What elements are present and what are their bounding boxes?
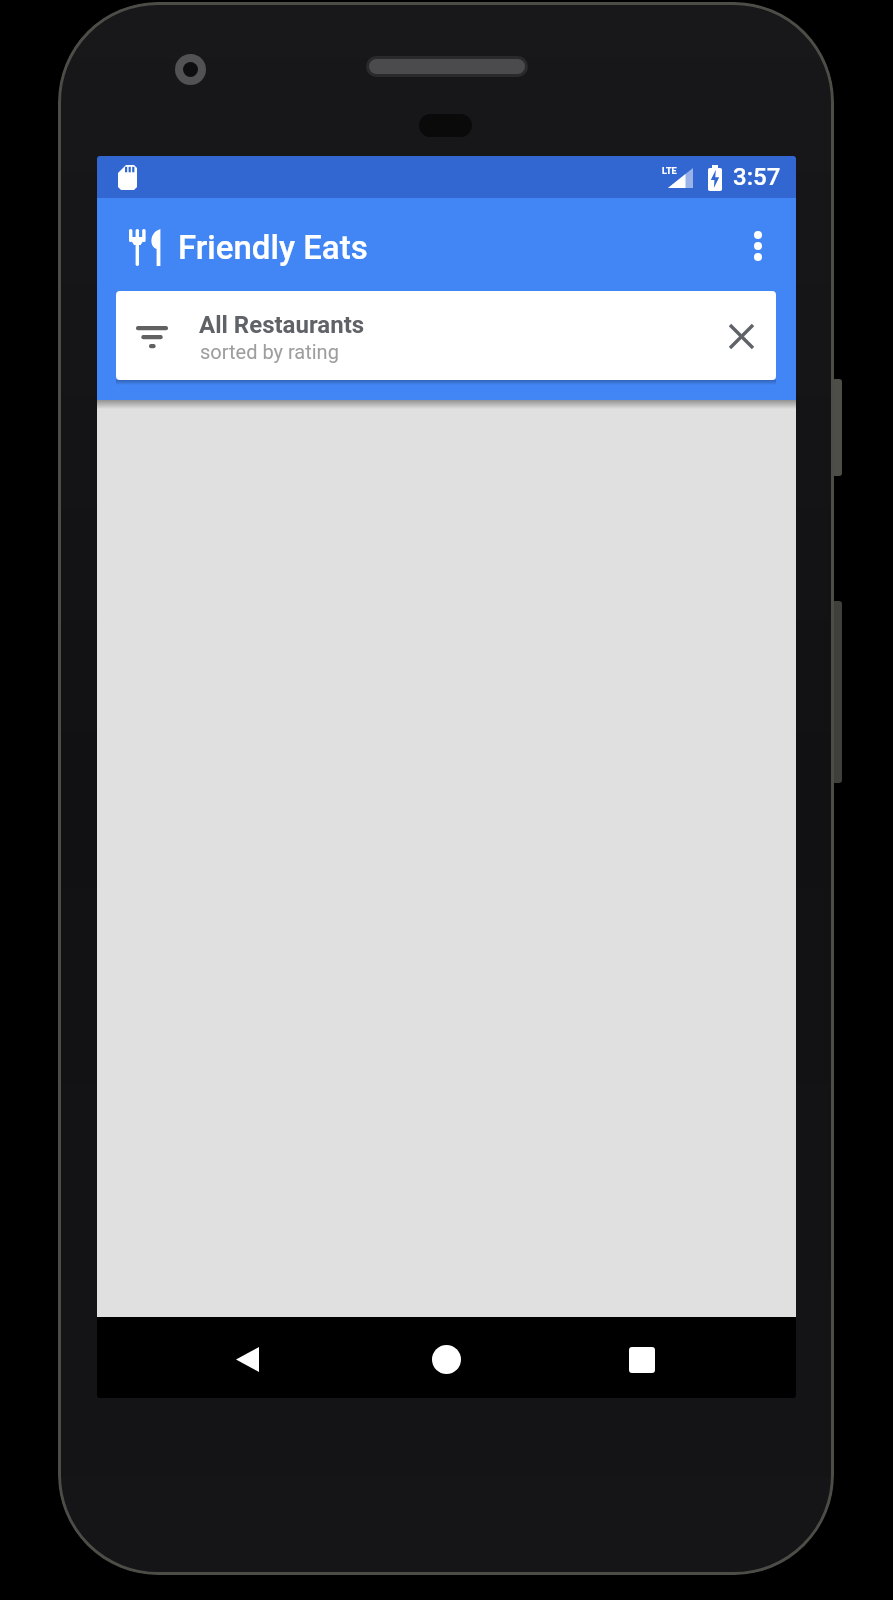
button[interactable]	[717, 312, 765, 360]
button[interactable]	[734, 226, 782, 276]
button[interactable]	[215, 1327, 280, 1392]
button[interactable]	[609, 1327, 674, 1392]
button[interactable]	[414, 1327, 479, 1392]
staticText: All Restaurants	[199, 311, 365, 339]
staticText: LTE	[662, 166, 677, 177]
staticText: sorted by rating	[200, 340, 339, 363]
staticText: Friendly Eats	[178, 228, 368, 267]
button[interactable]: All Restaurants	[116, 291, 776, 380]
staticText: 3:57	[733, 163, 781, 191]
